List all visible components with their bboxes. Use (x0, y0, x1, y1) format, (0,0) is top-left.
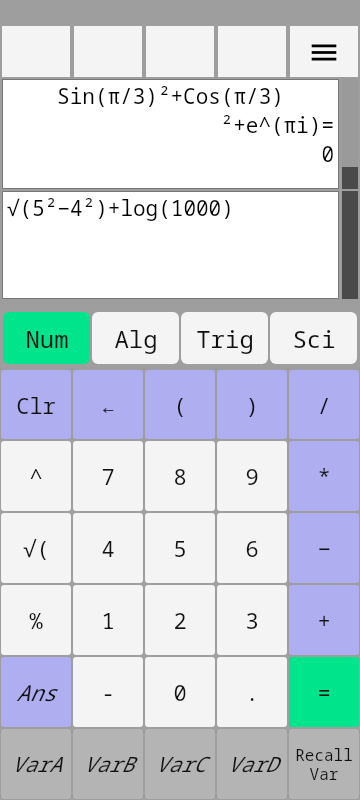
staticText: 5 (173, 533, 187, 563)
button[interactable]: 3 (217, 585, 287, 655)
button[interactable]: 9 (217, 441, 287, 511)
button[interactable]: 8 (145, 441, 215, 511)
button[interactable]: Clr (1, 370, 71, 439)
staticText: / (317, 390, 331, 420)
staticText: Sin(π/3)²+Cos(π/3) (7, 82, 334, 111)
staticText: 8 (173, 461, 187, 491)
button[interactable]: VarA (1, 729, 71, 799)
staticText: ^ (29, 461, 43, 491)
button[interactable]: VarB (73, 729, 143, 799)
button[interactable]: - (73, 657, 143, 727)
staticText: Clr (16, 390, 56, 420)
button[interactable]: + (289, 585, 359, 655)
staticText: √( (23, 533, 50, 563)
button[interactable]: 1 (73, 585, 143, 655)
staticText: Sci (292, 322, 336, 355)
staticText: ²+e^(πi)= (7, 111, 334, 140)
button[interactable]: 7 (73, 441, 143, 511)
staticText: √(5²−4²)+log(1000) (7, 194, 334, 223)
button[interactable]: √( (1, 513, 71, 583)
staticText: 1 (101, 605, 115, 635)
button[interactable]: = (289, 657, 359, 727)
button[interactable]: 2 (145, 585, 215, 655)
button[interactable]: 4 (73, 513, 143, 583)
button[interactable]: VarD (217, 729, 287, 799)
staticText: Recall Var (295, 744, 353, 785)
button[interactable]: ) (217, 370, 287, 439)
staticText: 0 (173, 677, 187, 707)
staticText: Alg (114, 322, 158, 355)
staticText: Ans (16, 677, 56, 707)
staticText: VarD (227, 750, 278, 779)
button[interactable]: Ans (1, 657, 71, 727)
staticText: 6 (245, 533, 259, 563)
button[interactable]: Sin(π/3)²+Cos(π/3) (2, 79, 339, 189)
button[interactable]: √(5²−4²)+log(1000) (2, 191, 339, 299)
button[interactable]: Num (3, 312, 90, 364)
staticText: = (317, 677, 331, 707)
button[interactable]: 6 (217, 513, 287, 583)
button[interactable]: Trig (181, 312, 268, 364)
staticText: VarC (155, 750, 206, 779)
button[interactable]: Recall Var (289, 729, 359, 799)
staticText: ) (245, 390, 259, 420)
staticText: * (317, 461, 331, 491)
staticText: 0 (7, 140, 334, 169)
staticText: 3 (245, 605, 259, 635)
button[interactable]: * (289, 441, 359, 511)
staticText: % (29, 605, 43, 635)
staticText: 9 (245, 461, 259, 491)
button[interactable]: % (1, 585, 71, 655)
staticText: 7 (101, 461, 115, 491)
button[interactable]: VarC (145, 729, 215, 799)
staticText: . (245, 677, 259, 707)
staticText: Trig (196, 322, 254, 355)
staticText: - (101, 677, 115, 707)
staticText: − (317, 533, 331, 563)
button[interactable]: Alg (92, 312, 179, 364)
staticText: 2 (173, 605, 187, 635)
button[interactable]: Sci (270, 312, 357, 364)
staticText: ← (101, 390, 115, 420)
button[interactable]: . (217, 657, 287, 727)
staticText: + (317, 605, 331, 635)
staticText: VarB (83, 750, 134, 779)
staticText: ( (173, 390, 187, 420)
button[interactable]: 0 (145, 657, 215, 727)
button[interactable]: − (289, 513, 359, 583)
button[interactable]: ^ (1, 441, 71, 511)
button[interactable]: 5 (145, 513, 215, 583)
button[interactable]: ( (145, 370, 215, 439)
button[interactable]: / (289, 370, 359, 439)
button[interactable]: Menu (290, 26, 358, 77)
button[interactable]: ← (73, 370, 143, 439)
staticText: 4 (101, 533, 115, 563)
staticText: Num (25, 322, 69, 355)
staticText: VarA (11, 750, 62, 779)
